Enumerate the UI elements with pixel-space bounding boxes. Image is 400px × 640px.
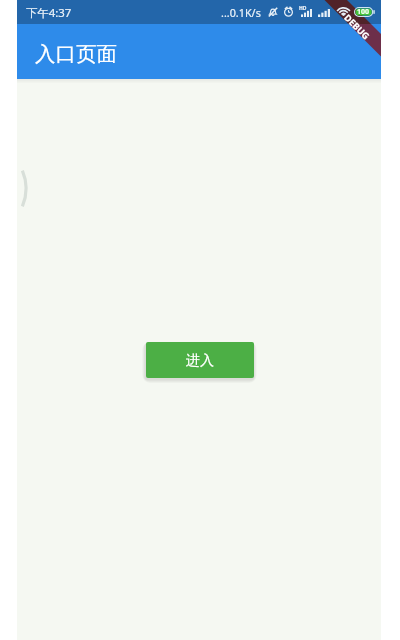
staticText: HD [299, 5, 307, 12]
button[interactable]: 进入 [146, 342, 254, 378]
staticText: 入口页面 [35, 41, 117, 67]
staticText: ...0.1K/s [221, 5, 261, 20]
staticText: 进入 [186, 352, 214, 370]
staticText: DEBUG [342, 11, 373, 42]
staticText: 下午4:37 [26, 5, 72, 21]
staticText: 100 [357, 7, 370, 17]
